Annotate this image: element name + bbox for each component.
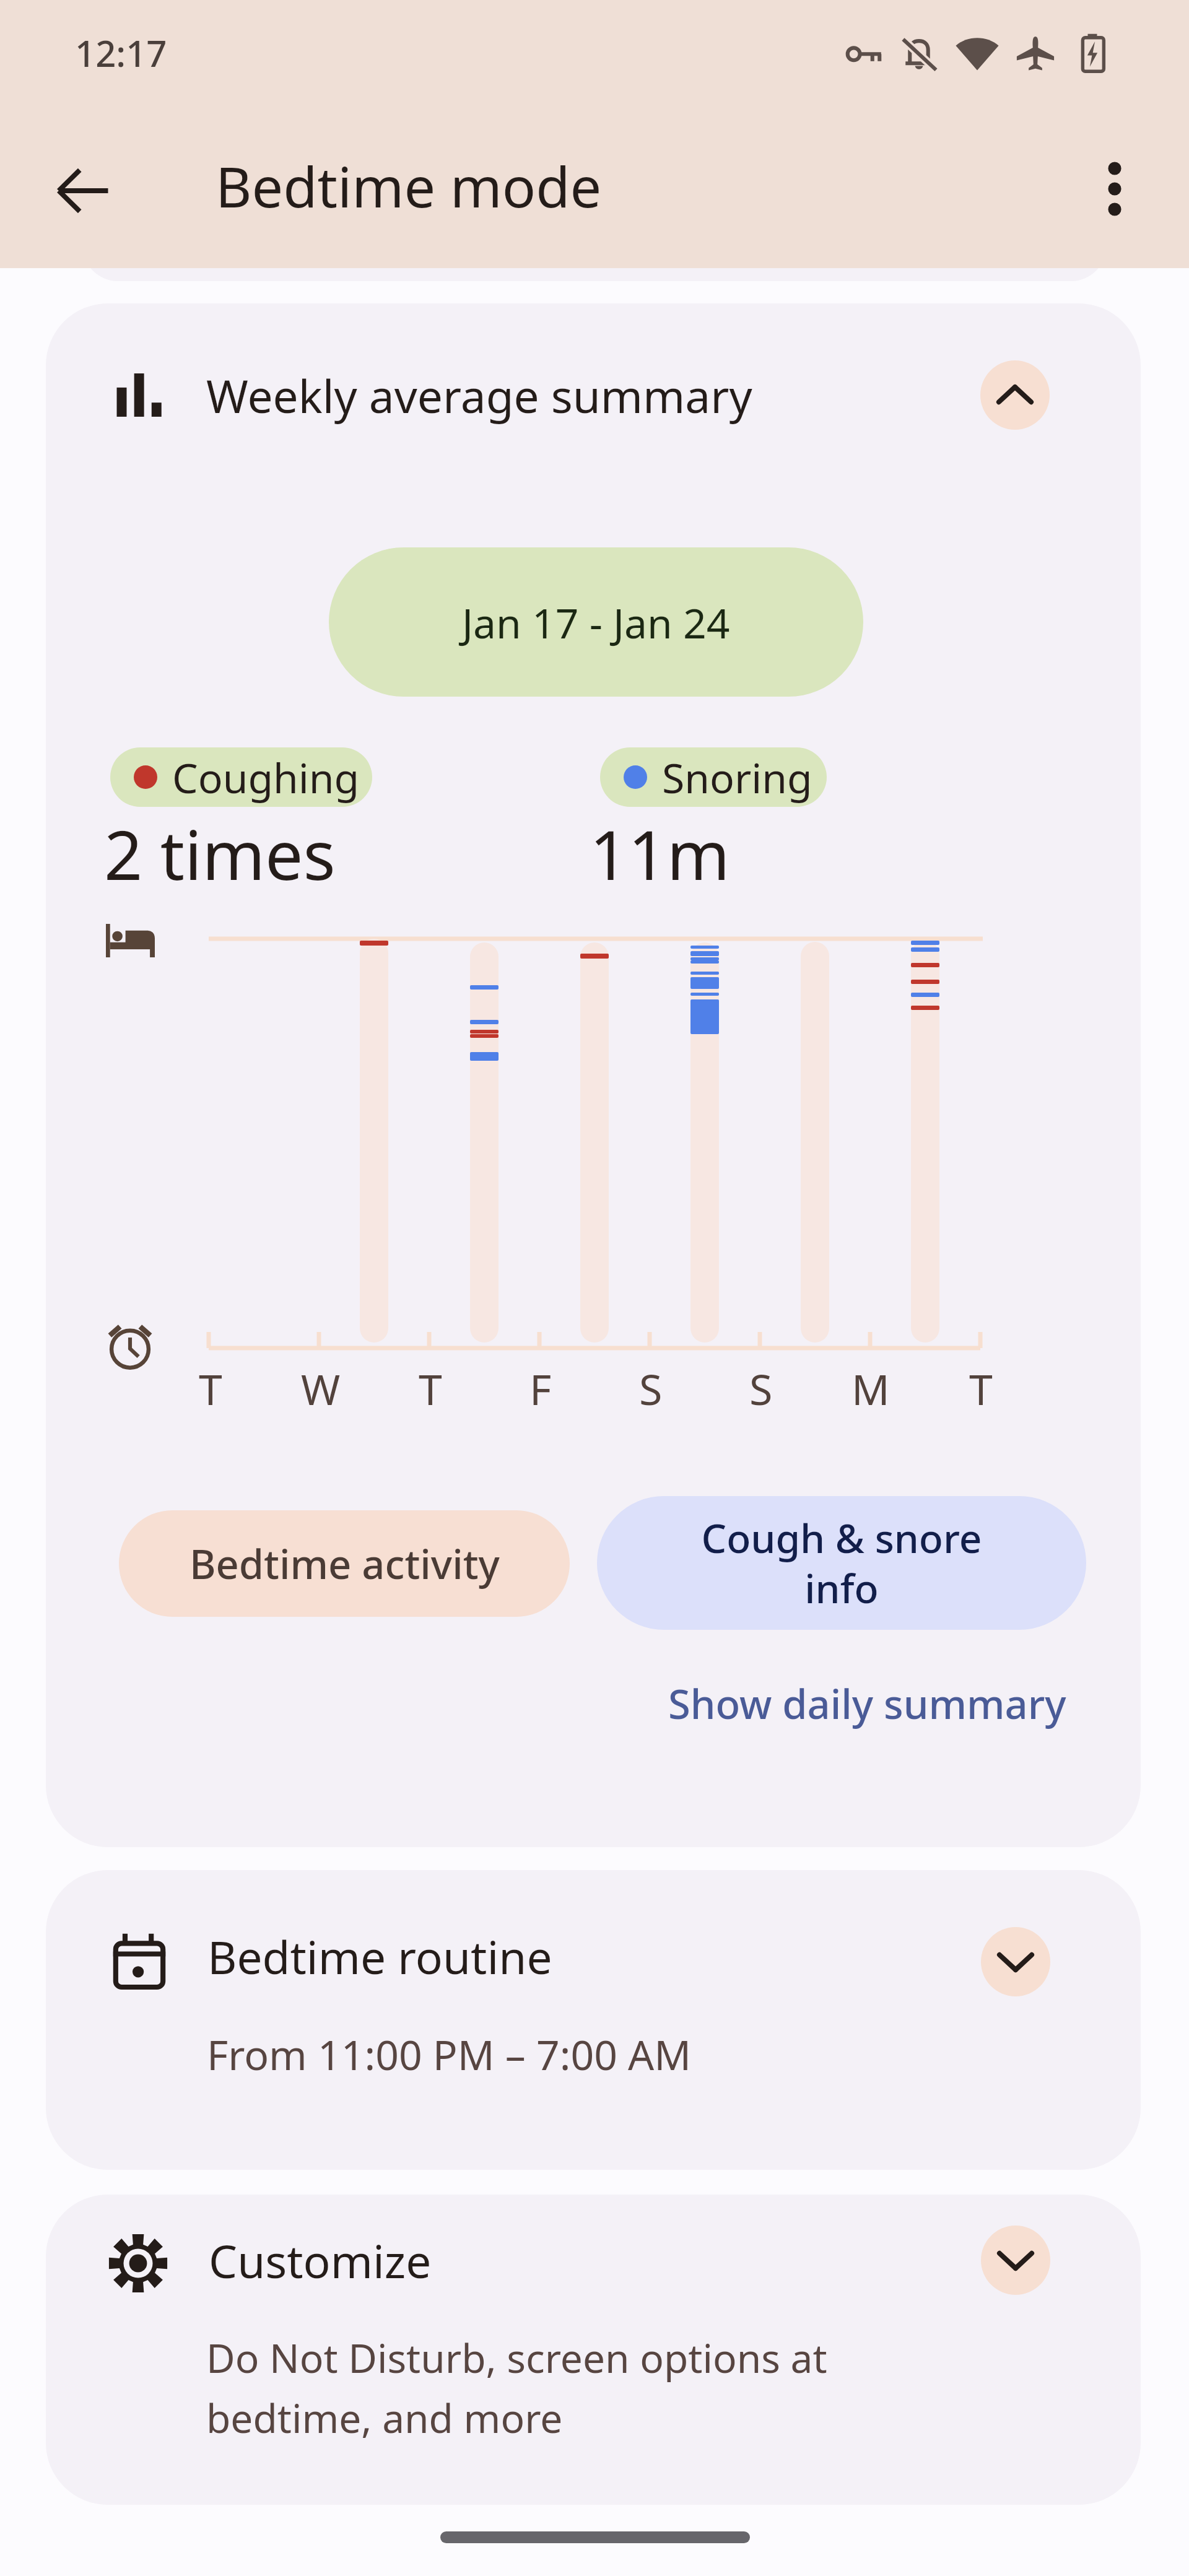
button[interactable]: Bedtime routine — [46, 1870, 1141, 2170]
staticText: S — [749, 1360, 773, 1417]
button[interactable]: Expand — [981, 2226, 1050, 2295]
staticText: F — [529, 1360, 552, 1417]
staticText: Bedtime activity — [189, 1536, 500, 1591]
staticText: Show daily summary — [668, 1676, 1066, 1731]
button[interactable]: More options — [1070, 144, 1159, 233]
button[interactable]: Expand — [981, 1927, 1050, 1996]
staticText: Weekly average summary — [206, 365, 752, 426]
staticText: T — [969, 1360, 993, 1417]
staticText: 12:17 — [75, 28, 167, 77]
button[interactable]: Back — [38, 146, 128, 235]
button[interactable]: Show daily summary — [638, 1663, 1096, 1744]
button[interactable]: Cough & snore info — [597, 1496, 1086, 1630]
button[interactable]: Collapse — [980, 360, 1050, 430]
staticText: 2 times — [104, 807, 336, 899]
staticText: Bedtime routine — [207, 1926, 552, 1987]
staticText: Jan 17 - Jan 24 — [462, 594, 730, 650]
button[interactable]: Customize — [46, 2195, 1141, 2505]
staticText: Snoring — [662, 749, 812, 805]
button[interactable]: Bedtime activity — [119, 1510, 570, 1617]
staticText: T — [419, 1360, 442, 1417]
staticText: Cough & snore info — [687, 1511, 996, 1615]
staticText: From 11:00 PM – 7:00 AM — [207, 2026, 692, 2082]
staticText: T — [199, 1360, 222, 1417]
staticText: Bedtime mode — [216, 148, 602, 224]
staticText: 11m — [590, 807, 730, 899]
staticText: Coughing — [172, 749, 360, 805]
staticText: M — [851, 1360, 890, 1417]
staticText: Do Not Disturb, screen options at bedtim… — [206, 2331, 827, 2445]
staticText: S — [639, 1360, 663, 1417]
button[interactable]: Jan 17 - Jan 24 — [329, 547, 863, 697]
staticText: Customize — [209, 2230, 432, 2291]
staticText: W — [301, 1360, 341, 1417]
